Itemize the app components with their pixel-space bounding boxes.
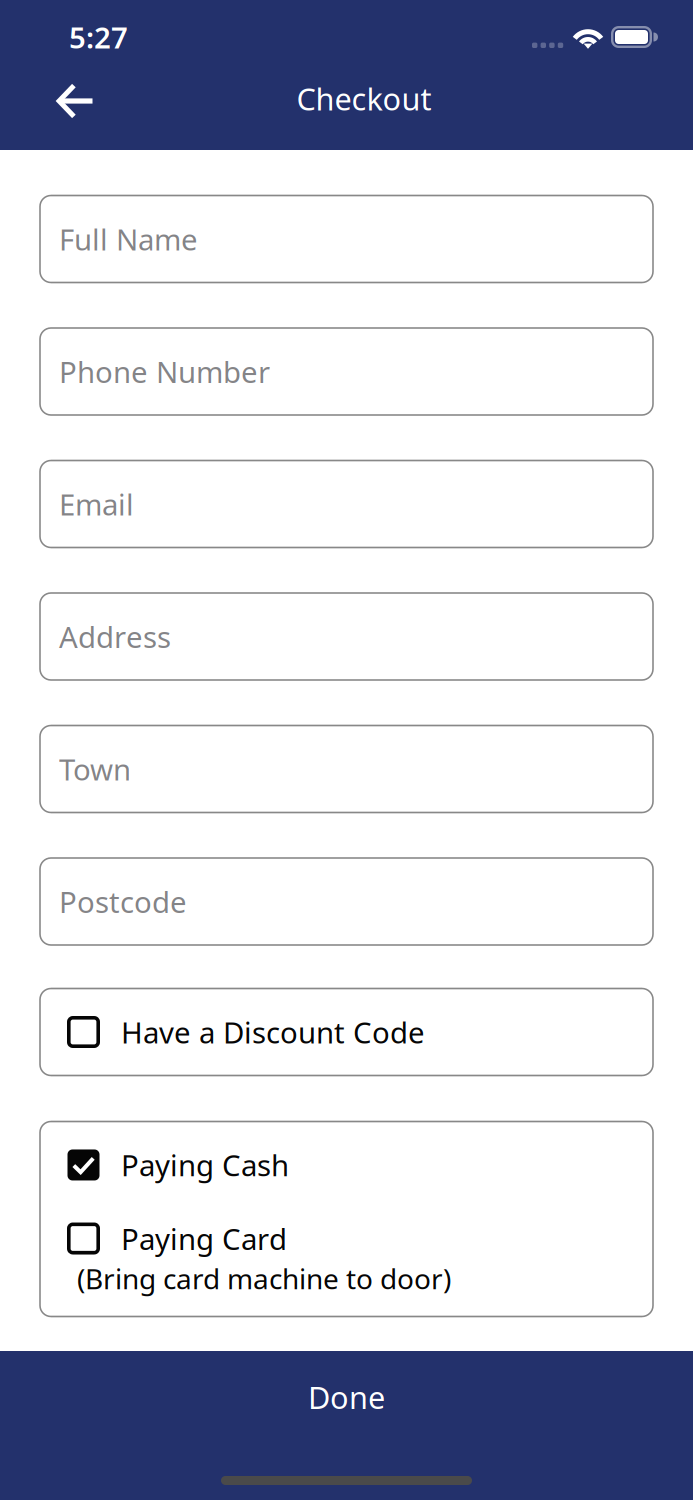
- staticText: Checkout: [296, 78, 431, 119]
- button[interactable]: Done: [0, 1351, 693, 1443]
- staticText: Paying Card: [121, 1219, 287, 1258]
- button[interactable]: Back: [40, 70, 110, 132]
- button[interactable]: Address: [40, 593, 653, 680]
- button[interactable]: Phone Number: [40, 328, 653, 415]
- button[interactable]: Paying Cash: [40, 1121, 653, 1215]
- staticText: 5:27: [69, 17, 128, 56]
- staticText: (Bring card machine to door): [77, 1260, 451, 1297]
- staticText: Postcode: [59, 882, 187, 921]
- staticText: Full Name: [59, 219, 198, 258]
- button[interactable]: Email: [40, 460, 653, 547]
- button[interactable]: Postcode: [40, 858, 653, 945]
- button[interactable]: Town: [40, 725, 653, 812]
- staticText: Email: [59, 484, 134, 523]
- staticText: Phone Number: [59, 352, 270, 391]
- staticText: Address: [59, 617, 171, 656]
- staticText: Done: [308, 1377, 385, 1417]
- staticText: Town: [59, 749, 131, 788]
- button[interactable]: Have a Discount Code: [40, 988, 653, 1075]
- staticText: Have a Discount Code: [121, 1012, 425, 1051]
- button[interactable]: Full Name: [40, 195, 653, 282]
- button[interactable]: Paying Card: [40, 1215, 653, 1316]
- staticText: Paying Cash: [121, 1145, 289, 1184]
